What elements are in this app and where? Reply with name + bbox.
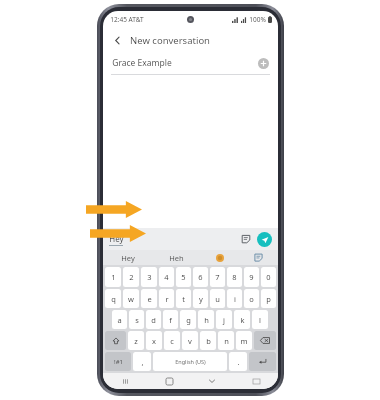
button[interactable]: 1 <box>105 267 121 287</box>
button[interactable]: u <box>210 289 225 308</box>
button[interactable]: Home <box>163 375 175 387</box>
button[interactable]: s <box>129 310 144 329</box>
staticText: o <box>249 294 254 304</box>
other: Back <box>112 35 123 46</box>
button[interactable]: , <box>133 352 151 371</box>
staticText: z <box>134 336 138 346</box>
button[interactable]: p <box>261 289 276 308</box>
button[interactable]: o <box>244 289 259 308</box>
button[interactable]: f <box>163 310 178 329</box>
button[interactable]: Hey <box>103 250 152 265</box>
staticText: 2 <box>129 272 134 282</box>
button[interactable]: 6 <box>193 267 208 287</box>
button[interactable]: Hey <box>109 233 241 246</box>
button[interactable]: Grace Example <box>103 52 278 74</box>
button[interactable]: t <box>176 289 191 308</box>
staticText: p <box>266 294 271 304</box>
button[interactable]: Stickers <box>241 234 251 244</box>
staticText: 0 <box>266 272 271 282</box>
button[interactable]: w <box>123 289 139 308</box>
button[interactable]: r <box>159 289 174 308</box>
staticText: f <box>169 315 172 325</box>
button[interactable]: k <box>234 310 250 329</box>
button[interactable]: 8 <box>227 267 242 287</box>
button[interactable]: Shift <box>105 331 126 350</box>
button[interactable]: Sticker suggestions <box>239 250 278 265</box>
button[interactable]: b <box>200 331 216 350</box>
button[interactable]: Emoji suggestion <box>200 250 239 265</box>
staticText: c <box>170 336 174 346</box>
staticText: r <box>165 294 169 304</box>
staticText: d <box>151 315 156 325</box>
button[interactable]: Send <box>257 232 272 247</box>
button[interactable]: Enter <box>249 352 276 371</box>
button[interactable]: Keyboard toggle <box>250 375 262 387</box>
button[interactable]: h <box>198 310 214 329</box>
button[interactable]: j <box>216 310 232 329</box>
staticText: 5 <box>181 272 186 282</box>
button[interactable]: y <box>193 289 208 308</box>
other: Add recipient <box>258 58 269 69</box>
staticText: h <box>204 315 209 325</box>
staticText: 100% <box>249 15 266 24</box>
staticText: u <box>215 294 220 304</box>
button[interactable]: 7 <box>210 267 225 287</box>
button[interactable]: 9 <box>244 267 259 287</box>
button[interactable]: x <box>146 331 162 350</box>
button[interactable]: n <box>218 331 234 350</box>
button[interactable]: 3 <box>141 267 157 287</box>
button[interactable]: a <box>112 310 127 329</box>
staticText: a <box>117 315 122 325</box>
button[interactable]: l <box>252 310 268 329</box>
staticText: New conversation <box>130 34 210 47</box>
button[interactable]: English (US) <box>153 352 227 371</box>
button[interactable]: 2 <box>123 267 139 287</box>
staticText: Hey <box>121 253 135 263</box>
staticText: l <box>259 315 261 325</box>
staticText: , <box>141 357 144 367</box>
button[interactable]: d <box>146 310 161 329</box>
button[interactable]: v <box>182 331 198 350</box>
staticText: q <box>111 294 116 304</box>
staticText: j <box>223 315 225 325</box>
button[interactable]: c <box>164 331 180 350</box>
button[interactable]: i <box>227 289 242 308</box>
staticText: b <box>206 336 211 346</box>
staticText: n <box>224 336 229 346</box>
button[interactable]: q <box>105 289 121 308</box>
button[interactable]: Back <box>103 28 278 52</box>
staticText: 12:45 AT&T <box>110 15 144 24</box>
button[interactable]: g <box>180 310 196 329</box>
staticText: Heh <box>169 253 184 263</box>
staticText: 1 <box>111 272 116 282</box>
staticText: Grace Example <box>112 57 172 69</box>
staticText: x <box>152 336 156 346</box>
staticText: 4 <box>164 272 169 282</box>
button[interactable]: m <box>236 331 252 350</box>
staticText: m <box>240 336 248 346</box>
staticText: i <box>234 294 236 304</box>
staticText: y <box>199 294 203 304</box>
button[interactable]: 5 <box>176 267 191 287</box>
button[interactable]: !#1 <box>105 352 131 371</box>
staticText: Hey <box>109 233 124 244</box>
staticText: w <box>128 294 134 304</box>
staticText: 7 <box>215 272 220 282</box>
button[interactable]: z <box>128 331 144 350</box>
staticText: English (US) <box>175 358 206 365</box>
staticText: !#1 <box>114 358 123 366</box>
button[interactable]: Back <box>206 375 218 387</box>
button[interactable]: Backspace <box>254 331 276 350</box>
staticText: 6 <box>198 272 203 282</box>
button[interactable]: 4 <box>159 267 174 287</box>
button[interactable]: Heh <box>152 250 200 265</box>
staticText: . <box>237 357 240 367</box>
button[interactable]: 0 <box>261 267 276 287</box>
button[interactable]: Recent apps <box>119 375 131 387</box>
staticText: 9 <box>249 272 254 282</box>
staticText: v <box>188 336 192 346</box>
staticText: k <box>240 315 245 325</box>
button[interactable]: . <box>229 352 247 371</box>
button[interactable]: e <box>141 289 157 308</box>
staticText: 3 <box>147 272 152 282</box>
